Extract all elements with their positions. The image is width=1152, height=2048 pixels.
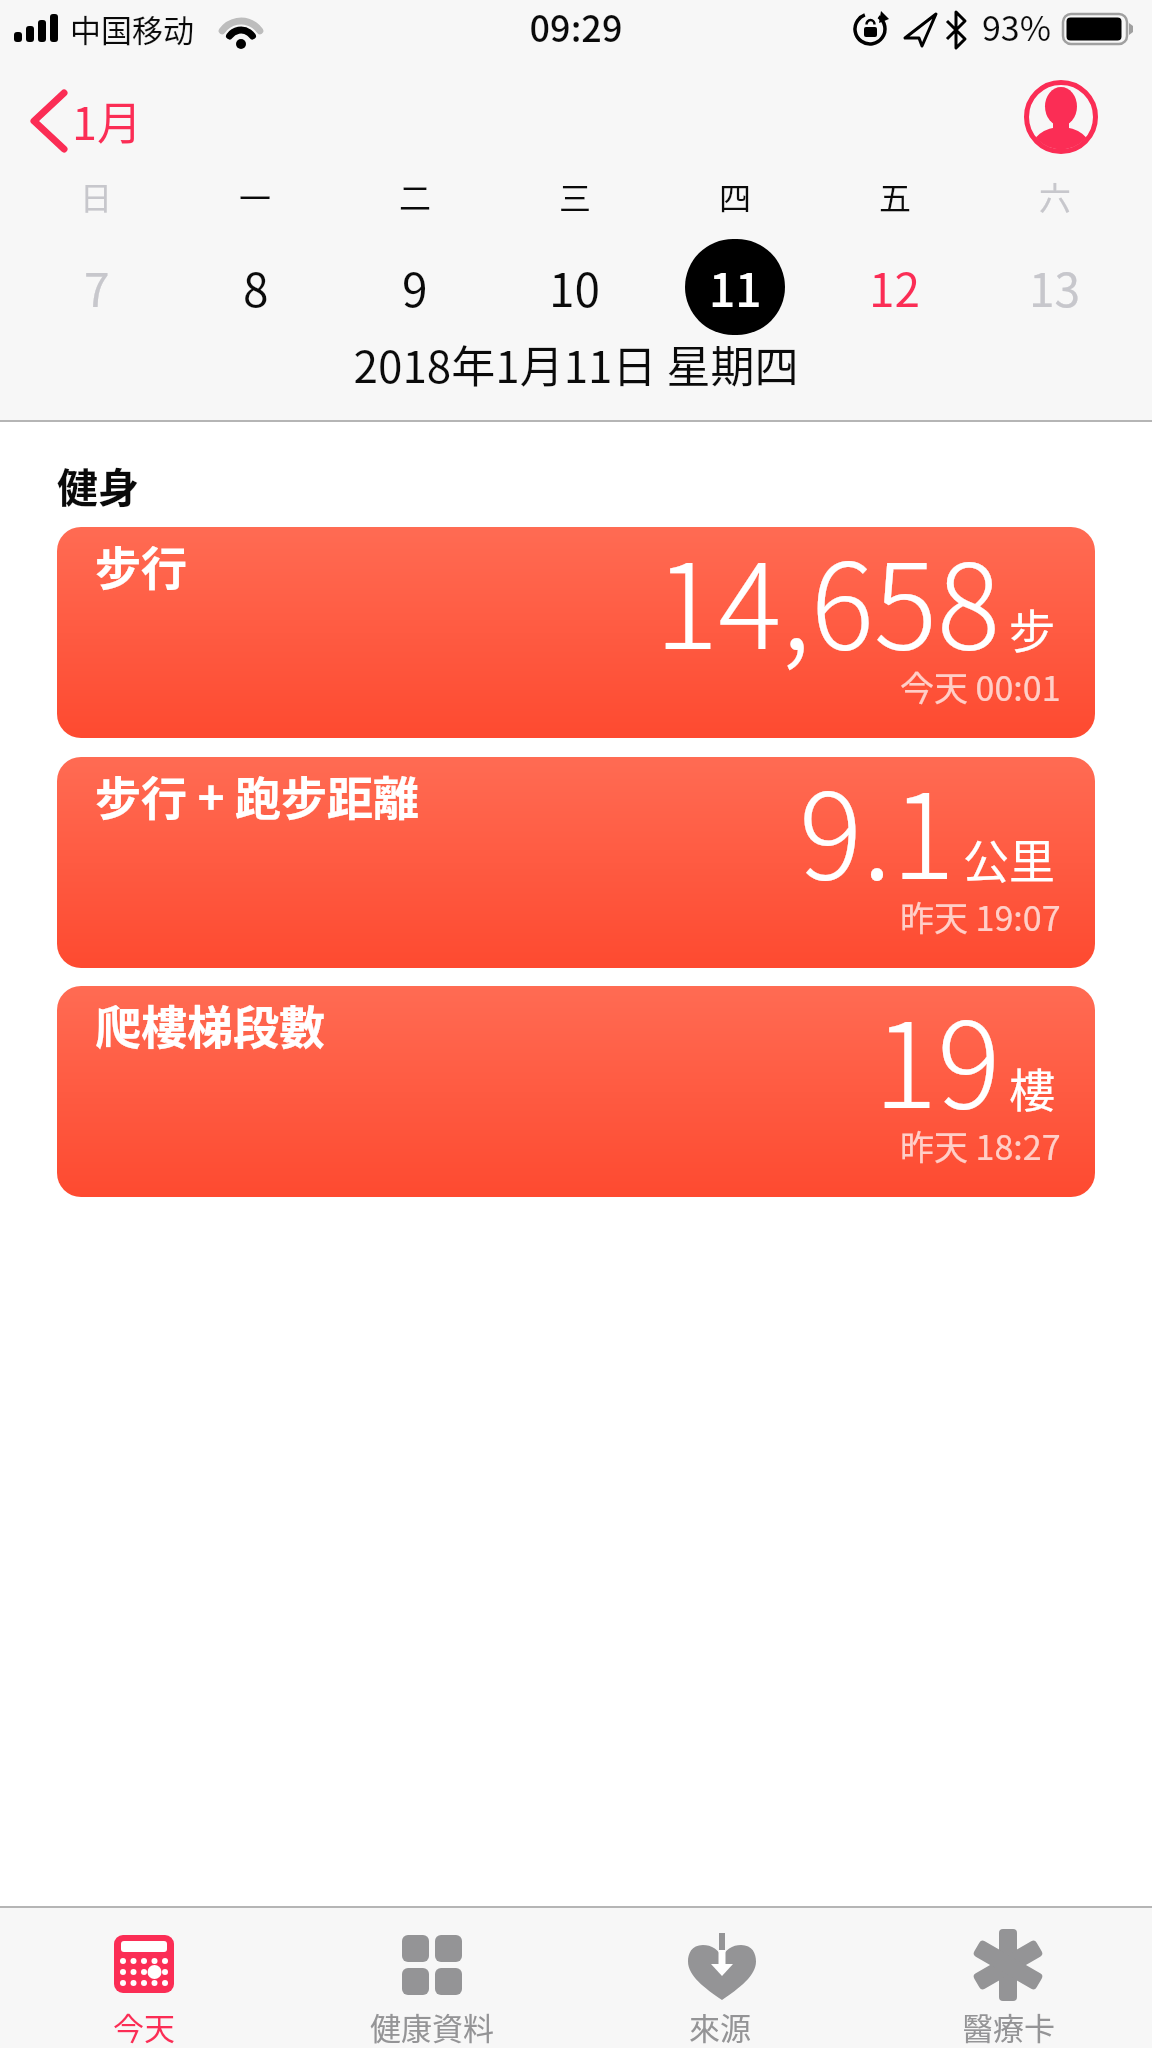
staticText: 二 xyxy=(399,173,432,213)
button[interactable]: 步行 xyxy=(57,527,1095,738)
staticText: 2018年1月11日 星期四 xyxy=(0,332,1152,396)
button[interactable]: 今天 xyxy=(0,1908,288,2048)
staticText: 六 xyxy=(1039,173,1072,213)
staticText: 三 xyxy=(559,173,592,213)
staticText: 9.1 xyxy=(799,757,955,913)
staticText: 一 xyxy=(239,173,272,213)
staticText: 8 xyxy=(243,254,269,321)
staticText: 來源 xyxy=(689,2004,751,2048)
staticText: 14,658 xyxy=(655,527,1001,683)
button[interactable]: 1月 xyxy=(26,88,142,153)
staticText: 步行 xyxy=(95,532,187,599)
staticText: 爬樓梯段數 xyxy=(95,991,325,1058)
staticText: 9 xyxy=(402,254,428,321)
staticText: 樓 xyxy=(1009,1054,1055,1121)
staticText: 四 xyxy=(719,173,752,213)
staticText: 日 xyxy=(80,173,113,213)
staticText: 步行 + 跑步距離 xyxy=(95,762,420,829)
button[interactable]: 爬樓梯段數 xyxy=(57,986,1095,1197)
staticText: 醫療卡 xyxy=(962,2004,1055,2048)
staticText: 93% xyxy=(982,2,1052,51)
staticText: 昨天 19:07 xyxy=(900,892,1061,941)
staticText: 7 xyxy=(84,254,110,321)
staticText: 19 xyxy=(874,986,1001,1142)
staticText: 健康資料 xyxy=(370,2004,494,2048)
staticText: 11 xyxy=(709,254,762,321)
staticText: 步 xyxy=(1009,595,1055,662)
button[interactable]: 健康資料 xyxy=(288,1908,576,2048)
staticText: 健身 xyxy=(57,455,139,514)
button[interactable]: 來源 xyxy=(576,1908,864,2048)
staticText: 公里 xyxy=(963,825,1055,892)
staticText: 1月 xyxy=(72,88,142,153)
staticText: 12 xyxy=(869,254,921,321)
button[interactable] xyxy=(1024,80,1098,154)
button[interactable]: 步行 + 跑步距離 xyxy=(57,757,1095,968)
staticText: 10 xyxy=(549,254,601,321)
staticText: 今天 00:01 xyxy=(900,662,1061,711)
staticText: 09:29 xyxy=(0,0,1152,52)
staticText: 昨天 18:27 xyxy=(900,1121,1061,1170)
staticText: 今天 xyxy=(113,2004,175,2048)
button[interactable]: 醫療卡 xyxy=(864,1908,1152,2048)
button[interactable]: 11 xyxy=(685,239,785,335)
staticText: 13 xyxy=(1029,254,1081,321)
staticText: 中国移动 xyxy=(70,6,194,51)
staticText: 五 xyxy=(879,173,912,213)
